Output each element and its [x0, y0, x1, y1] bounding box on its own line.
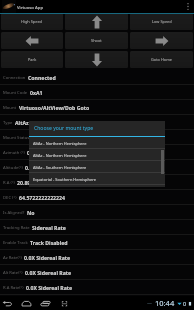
button[interactable]: DEC (°)	[0, 190, 194, 205]
button[interactable]: More options	[183, 0, 192, 13]
staticText: R.A (°)	[3, 180, 15, 186]
staticText: 0.0X Sidereal Rate	[26, 284, 73, 291]
button[interactable]: Move left	[1, 32, 63, 49]
staticText: 0.0X Sidereal Rate	[24, 254, 71, 261]
button[interactable]: Low Speed	[130, 13, 193, 30]
staticText: Connected	[28, 74, 56, 81]
staticText: Virtuoso App	[17, 4, 44, 10]
button[interactable]: Azimuth (°)	[0, 145, 194, 160]
button[interactable]: Move right	[130, 32, 193, 49]
staticText: Track Disabled	[30, 239, 68, 246]
button[interactable]: Mount	[0, 100, 194, 115]
button[interactable]: Alt Rate(°)	[0, 265, 194, 280]
staticText: Sidereal Rate	[32, 224, 66, 231]
staticText: Equatorial - Southern Hemisphere	[33, 177, 96, 182]
staticText: Tracking Rate	[3, 225, 30, 231]
staticText: Virtuoso/AltView/Dob Goto	[19, 104, 90, 111]
staticText: AltAz - Northern Hemisphere	[33, 153, 87, 158]
staticText: Alt Rate(°)	[3, 270, 23, 276]
staticText: Low Speed	[152, 19, 172, 24]
staticText: Mount Code	[3, 90, 28, 96]
staticText: Connection	[3, 75, 26, 81]
staticText: Goto Home	[151, 57, 173, 62]
staticText: —	[147, 300, 153, 307]
button[interactable]: Az Rate(°)	[0, 250, 194, 265]
staticText: 0	[183, 300, 187, 307]
button[interactable]: Back	[1, 297, 14, 310]
staticText: AltAz - N	[15, 119, 38, 126]
staticText: 0.1	[25, 164, 33, 171]
button[interactable]: Home	[20, 297, 33, 310]
staticText: R.A Rate(°)	[3, 285, 24, 291]
button[interactable]: Resize	[58, 297, 71, 310]
button[interactable]: R.A Rate(°)	[0, 280, 194, 295]
button[interactable]: Move up	[65, 13, 128, 30]
staticText: 10:44	[155, 298, 175, 308]
button[interactable]: AltAz - Northern Hemisphere	[29, 149, 165, 161]
button[interactable]: High Speed	[1, 13, 63, 30]
staticText: 0xA1	[30, 89, 43, 96]
staticText: Altitude(°)	[3, 165, 23, 171]
button[interactable]: R.A (°)	[0, 175, 194, 190]
staticText: No	[27, 209, 35, 216]
button[interactable]: App icon	[2, 0, 16, 13]
button[interactable]: Altitude(°)	[0, 160, 194, 175]
staticText: 64.5722222222224	[19, 194, 65, 201]
button[interactable]: Connection	[0, 70, 194, 85]
button[interactable]: Move down	[65, 51, 128, 68]
button[interactable]: Type	[0, 115, 194, 130]
button[interactable]: Tracking Rate	[0, 220, 194, 235]
staticText: 0.0X Sidereal Rate	[25, 269, 72, 276]
staticText: Shoot	[91, 38, 102, 43]
button[interactable]: Mount Status	[0, 130, 194, 145]
staticText: Type	[3, 120, 13, 126]
staticText: 0.	[27, 149, 32, 156]
staticText: DEC (°)	[3, 195, 17, 201]
staticText: Is Aligned?	[3, 210, 25, 216]
staticText: AltAz - Southern Hemisphere	[33, 165, 87, 170]
staticText: High Speed	[21, 19, 43, 24]
button[interactable]: Equatorial - Southern Hemisphere	[29, 173, 165, 185]
button[interactable]: Park	[1, 51, 63, 68]
staticText: AltAz - Northern Hemisphere	[33, 141, 87, 146]
button[interactable]: Enable Track	[0, 235, 194, 250]
staticText: Az Rate(°)	[3, 255, 22, 261]
button[interactable]: Mount Code	[0, 85, 194, 100]
button[interactable]: Goto Home	[130, 51, 193, 68]
staticText: Park	[28, 57, 37, 62]
staticText: 20.89	[17, 179, 31, 186]
staticText: Mount Status	[3, 135, 30, 141]
staticText: Mount	[3, 105, 17, 111]
button[interactable]: Is Aligned?	[0, 205, 194, 220]
staticText: Choose your mount type	[34, 125, 94, 132]
button[interactable]: AltAz - Northern Hemisphere	[29, 137, 165, 149]
staticText: Enable Track	[3, 240, 28, 246]
staticText: Azimuth (°)	[3, 150, 25, 156]
button[interactable]: AltAz - Southern Hemisphere	[29, 161, 165, 173]
button[interactable]: Shoot	[65, 32, 128, 49]
button[interactable]: Recent apps	[39, 297, 52, 310]
